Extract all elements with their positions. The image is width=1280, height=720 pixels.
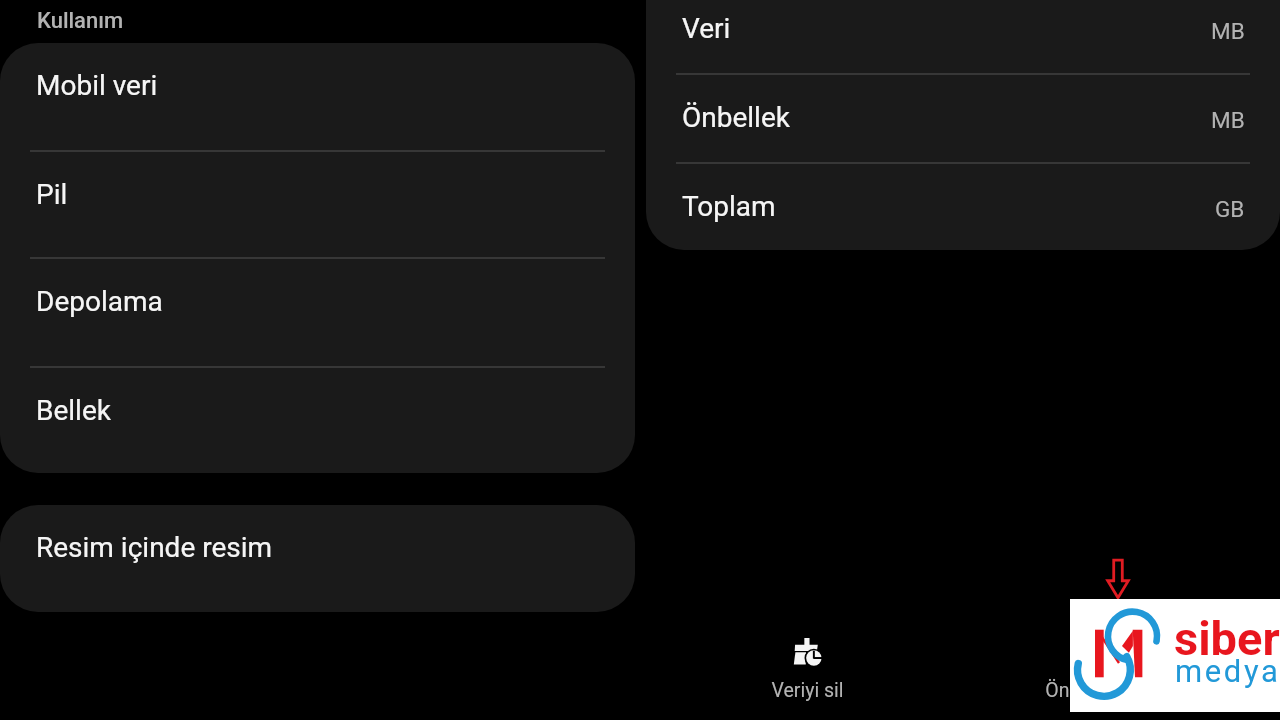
staticText: Kullanım: [37, 8, 124, 34]
button[interactable]: Önbelleği sil: [1008, 638, 1188, 710]
button[interactable]: Resim içinde resim: [0, 505, 635, 612]
staticText: medya: [1175, 653, 1280, 689]
button[interactable]: Önbellek: [646, 75, 1280, 164]
button[interactable]: Veriyi sil: [717, 638, 897, 710]
staticText: Veriyi sil: [771, 679, 844, 702]
staticText: Önbelleği sil: [1045, 679, 1151, 702]
staticText: MB: [1211, 18, 1245, 44]
button[interactable]: Veri: [646, 0, 1280, 75]
button[interactable]: Toplam: [646, 164, 1280, 250]
staticText: Pil: [36, 178, 68, 211]
staticText: Bellek: [36, 394, 111, 427]
staticText: Depolama: [36, 285, 163, 318]
staticText: Resim içinde resim: [36, 531, 273, 564]
button[interactable]: Mobil veri: [0, 43, 635, 152]
staticText: MB: [1211, 107, 1245, 133]
other: Önbelleği sil: [1084, 638, 1112, 666]
staticText: Önbellek: [682, 101, 790, 134]
button[interactable]: Bellek: [0, 368, 635, 473]
staticText: Toplam: [682, 190, 776, 223]
other: Veriyi sil: [793, 638, 821, 666]
staticText: GB: [1215, 196, 1245, 222]
staticText: Mobil veri: [36, 69, 158, 102]
button[interactable]: Pil: [0, 152, 635, 259]
staticText: Veri: [682, 12, 731, 45]
button[interactable]: Depolama: [0, 259, 635, 368]
staticText: siber: [1174, 611, 1280, 666]
